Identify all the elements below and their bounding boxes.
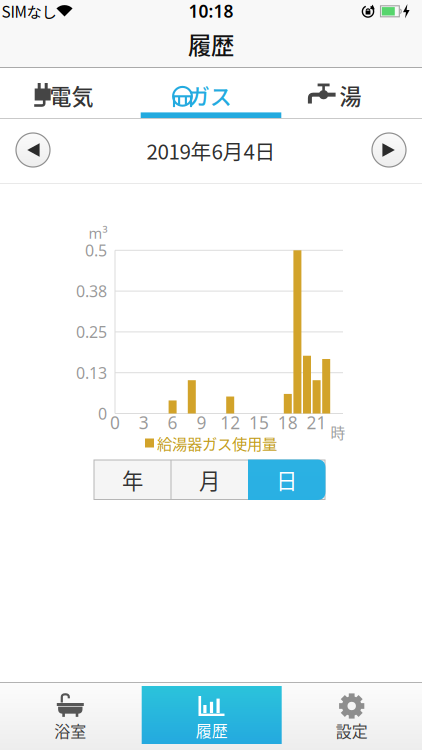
button[interactable]: 設定 <box>281 683 422 750</box>
staticText: 21 <box>307 411 327 434</box>
button[interactable]: 日 <box>248 460 325 499</box>
button[interactable]: 電気 <box>0 67 141 118</box>
staticText: 2019年6月4日 <box>146 135 275 165</box>
staticText: 時 <box>330 421 345 443</box>
staticText: 9 <box>196 411 206 434</box>
button[interactable]: ガス <box>141 67 281 118</box>
button[interactable]: 履歴 <box>142 686 282 744</box>
staticText: 0.13 <box>76 362 107 383</box>
staticText: 履歴 <box>196 718 228 742</box>
staticText: 電気 <box>50 79 94 111</box>
button[interactable]: 年 <box>94 460 171 499</box>
staticText: 履歴 <box>188 27 234 61</box>
staticText: 3 <box>139 411 149 434</box>
staticText: 0.5 <box>85 240 107 261</box>
staticText: 給湯器ガス使用量 <box>157 432 277 454</box>
button[interactable]: 湯 <box>281 67 422 118</box>
staticText: 12 <box>220 411 240 434</box>
staticText: 15 <box>249 411 269 434</box>
staticText: 6 <box>168 411 178 434</box>
staticText: 湯 <box>340 79 362 111</box>
staticText: 0.38 <box>76 280 107 302</box>
button[interactable]: 月 <box>171 460 248 499</box>
staticText: 浴室 <box>54 719 86 742</box>
staticText: 年 <box>122 464 143 495</box>
staticText: 日 <box>276 464 297 495</box>
staticText: m³ <box>88 223 107 243</box>
staticText: ガス <box>188 79 232 111</box>
staticText: 10:18 <box>188 0 233 22</box>
staticText: 月 <box>199 464 220 495</box>
staticText: 18 <box>278 411 298 434</box>
staticText: 0.25 <box>76 321 107 342</box>
staticText: 設定 <box>336 719 368 742</box>
button[interactable] <box>15 132 51 168</box>
staticText: SIMなし <box>1 0 56 22</box>
button[interactable] <box>371 132 407 168</box>
button[interactable]: 浴室 <box>0 683 141 750</box>
staticText: 0 <box>110 411 120 434</box>
staticText: 0 <box>98 403 107 424</box>
